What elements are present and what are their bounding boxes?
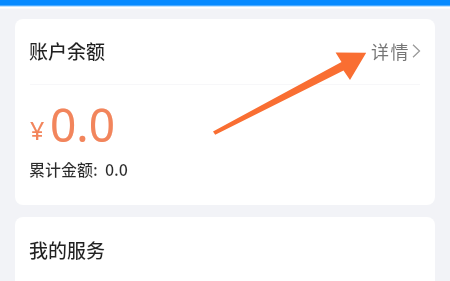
staticText: 0.0 (50, 93, 115, 156)
staticText: 我的服务 (29, 236, 106, 264)
staticText: 累计金额: 0.0 (29, 157, 128, 180)
staticText: ¥ (30, 113, 45, 147)
button[interactable]: 详情 (357, 28, 435, 74)
staticText: 详情 (371, 38, 411, 64)
staticText: 账户余额 (29, 37, 106, 65)
button[interactable]: 账户余额 (15, 19, 435, 205)
button[interactable]: 我的服务 (15, 217, 435, 281)
other: Annotation arrow pointing at 详情 (0, 0, 450, 281)
